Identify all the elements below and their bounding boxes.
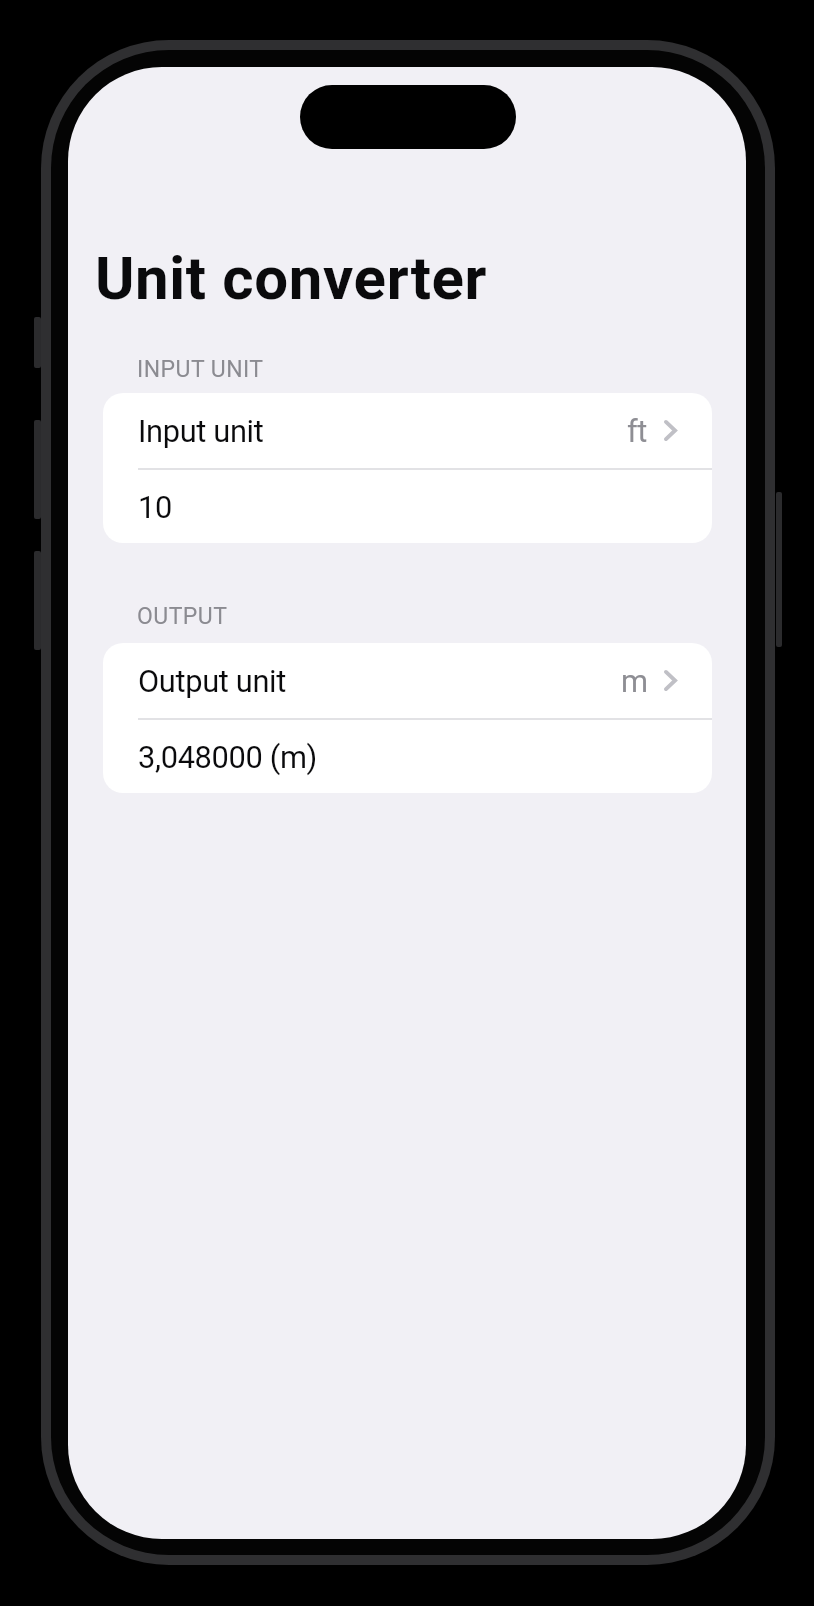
staticText: OUTPUT <box>137 603 228 630</box>
staticText: Unit converter <box>95 243 488 313</box>
button[interactable]: 10 <box>103 470 712 543</box>
staticText: m <box>621 663 648 699</box>
button[interactable]: 3,048000 (m) <box>103 720 712 793</box>
staticText: 10 <box>138 489 172 525</box>
button[interactable]: Change output unit <box>103 643 712 718</box>
staticText: ft <box>627 413 648 449</box>
staticText: INPUT UNIT <box>137 356 264 383</box>
staticText: Output unit <box>138 663 286 699</box>
staticText: 3,048000 (m) <box>138 739 317 775</box>
button[interactable]: Change input unit <box>103 393 712 468</box>
staticText: Input unit <box>138 413 264 449</box>
